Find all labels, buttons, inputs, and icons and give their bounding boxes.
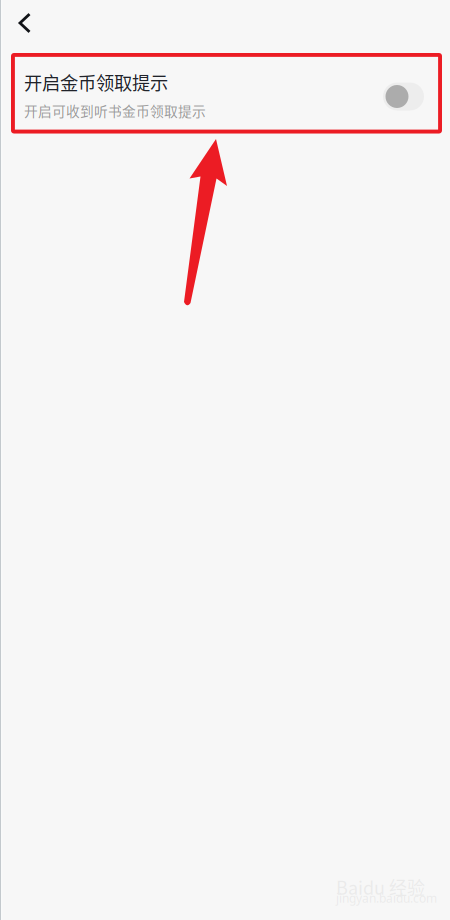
staticText: 开启可收到听书金币领取提示	[24, 101, 206, 120]
button[interactable]: 开启金币领取提示	[0, 55, 450, 135]
button[interactable]: 开启金币领取提示	[383, 82, 424, 110]
staticText: 开启金币领取提示	[24, 69, 168, 95]
button[interactable]: Back	[3, 1, 47, 45]
staticText: jingyan.baidu.com	[336, 890, 437, 906]
staticText: Baidu 经验	[336, 874, 425, 900]
